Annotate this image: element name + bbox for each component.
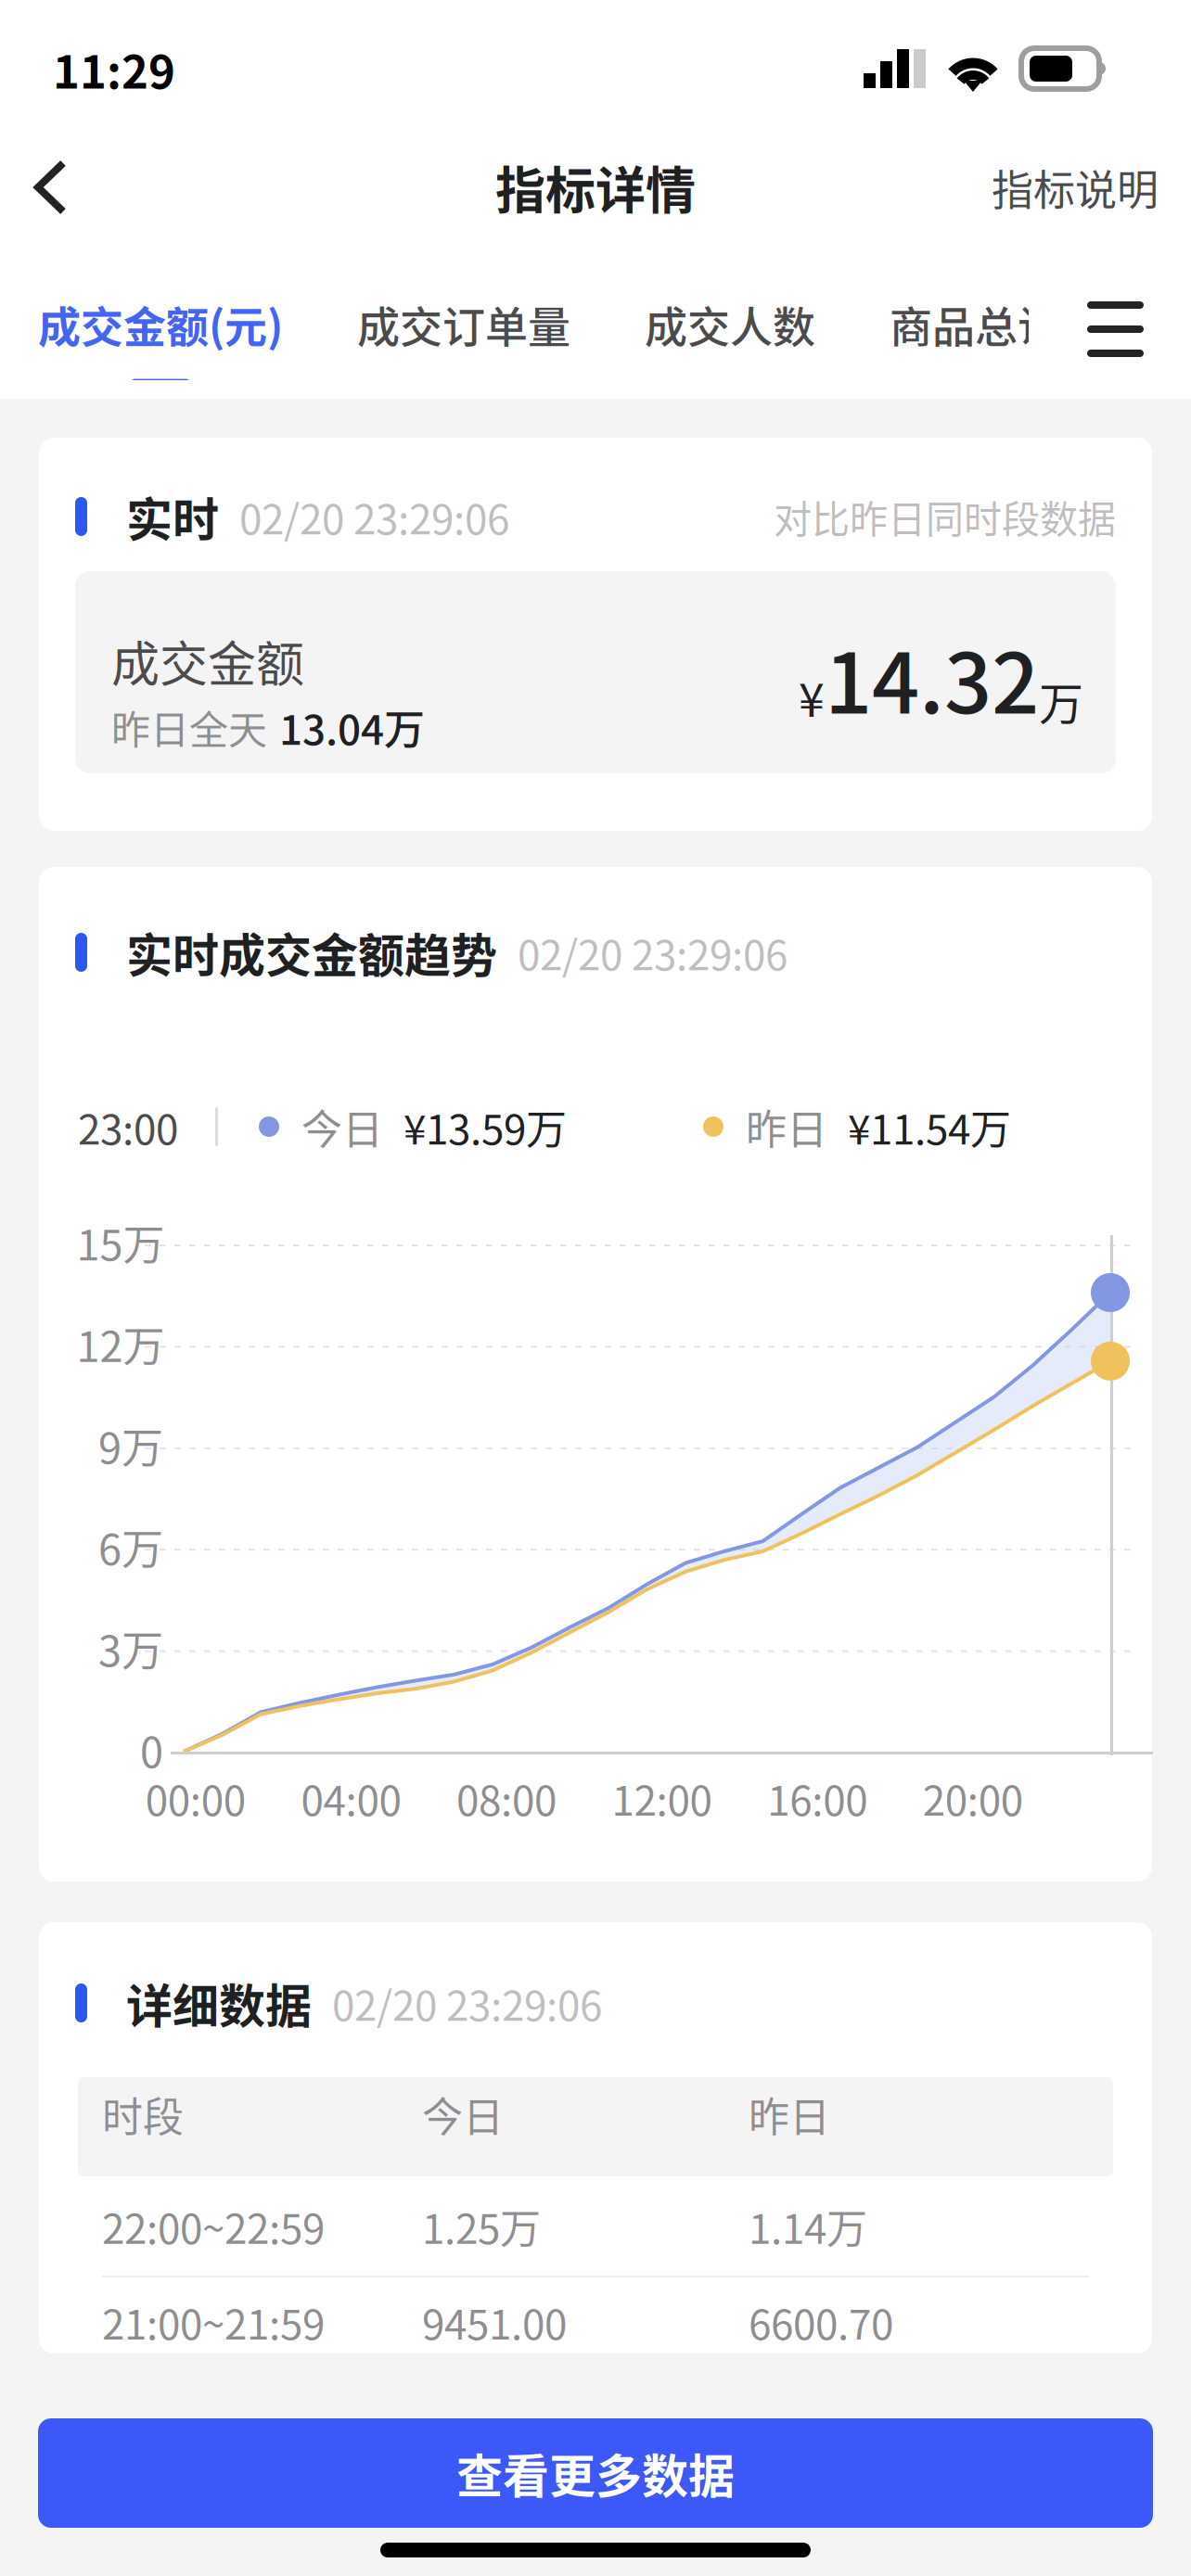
staticText: 02/20 23:29:06 (239, 487, 509, 546)
staticText: 今日 (301, 1097, 383, 1156)
staticText: 12万 (77, 1314, 165, 1374)
staticText: 指标详情 (495, 151, 696, 224)
staticText: 成交金额(元) (38, 293, 283, 355)
staticText: 00:00 (145, 1768, 246, 1827)
staticText: 04:00 (301, 1768, 401, 1827)
staticText: 9451.00 (422, 2292, 567, 2351)
button[interactable]: 成交订单量 (320, 236, 608, 380)
staticText: 成交人数 (645, 293, 815, 355)
staticText: 对比昨日同时段数据 (774, 489, 1116, 544)
button[interactable]: 商品总访问量 (852, 236, 1183, 380)
staticText: 15万 (77, 1212, 165, 1273)
staticText: 详细数据 (126, 1969, 312, 2037)
button[interactable]: 更多指标 (1040, 236, 1191, 380)
staticText: 22:00~22:59 (102, 2196, 325, 2255)
staticText: 08:00 (456, 1768, 557, 1827)
staticText: 今日 (422, 2085, 504, 2144)
staticText: 0 (140, 1719, 163, 1780)
staticText: 查看更多数据 (456, 2440, 735, 2507)
staticText: 实时成交金额趋势 (126, 919, 497, 986)
staticText: 指标说明 (992, 157, 1159, 218)
staticText: 成交订单量 (357, 293, 570, 355)
staticText: 商品总访问量 (890, 293, 1146, 355)
staticText: 14.32 (825, 617, 1039, 737)
staticText: 23:00 (78, 1097, 178, 1156)
staticText: 昨日 (749, 2085, 830, 2144)
staticText: 1.14万 (749, 2196, 867, 2255)
staticText: 昨日 (746, 1097, 827, 1156)
button[interactable]: 查看更多数据 (38, 2418, 1153, 2528)
staticText: 6万 (98, 1516, 163, 1577)
staticText: 11:29 (53, 36, 175, 102)
staticText: 20:00 (923, 1768, 1023, 1827)
button[interactable]: 成交人数 (608, 236, 852, 380)
staticText: ¥11.54万 (848, 1097, 1011, 1156)
staticText: ¥13.59万 (403, 1097, 567, 1156)
staticText: 02/20 23:29:06 (332, 1973, 602, 2032)
staticText: 成交金额 (111, 626, 304, 696)
staticText: 13.04万 (279, 698, 425, 757)
staticText: 实时 (126, 483, 219, 550)
button[interactable]: 返回 (0, 139, 100, 236)
button[interactable]: 成交金额(元) (1, 236, 320, 380)
staticText: 02/20 23:29:06 (518, 923, 788, 982)
staticText: 万 (1039, 668, 1083, 733)
staticText: 昨日全天 (111, 699, 267, 755)
staticText: ¥ (799, 663, 825, 730)
staticText: 时段 (102, 2085, 184, 2144)
staticText: 12:00 (612, 1768, 712, 1827)
staticText: 21:00~21:59 (102, 2292, 325, 2351)
staticText: 3万 (98, 1618, 163, 1678)
button[interactable]: 指标说明 (959, 139, 1191, 236)
staticText: 1.25万 (422, 2196, 541, 2255)
staticText: 9万 (98, 1415, 163, 1475)
staticText: 6600.70 (749, 2292, 893, 2351)
staticText: 16:00 (767, 1768, 867, 1827)
